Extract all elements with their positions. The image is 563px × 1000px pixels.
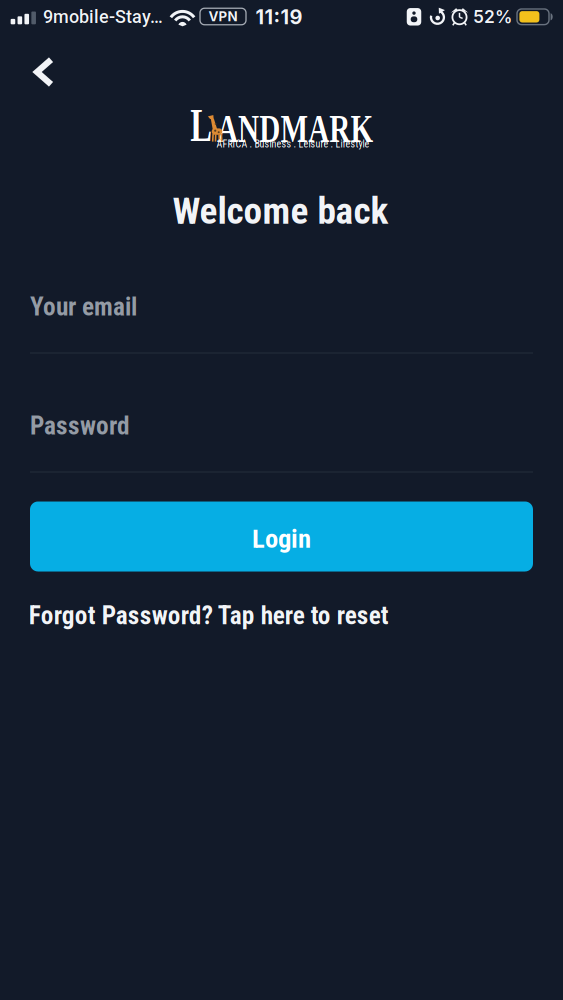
staticText: VPN (208, 8, 237, 24)
button[interactable]: Your email (30, 292, 533, 353)
staticText: Password (30, 411, 130, 441)
staticText: AFRICA . Business . Leisure . Lifestyle (216, 138, 369, 150)
staticText: Your email (30, 292, 137, 322)
button[interactable]: Forgot Password? Tap here to reset (29, 601, 535, 630)
staticText: L (185, 99, 216, 151)
staticText: Forgot Password? Tap here to reset (29, 601, 389, 630)
staticText: 11:19 (255, 5, 302, 29)
staticText: 52% (473, 6, 512, 27)
button[interactable]: Login (30, 501, 533, 571)
staticText: Welcome back (172, 189, 388, 233)
button[interactable]: Back (23, 48, 65, 95)
button[interactable]: Password (30, 411, 533, 472)
staticText: ANDMARK (188, 106, 402, 151)
staticText: 9mobile-Stay… (43, 6, 163, 27)
staticText: Login (252, 523, 311, 554)
